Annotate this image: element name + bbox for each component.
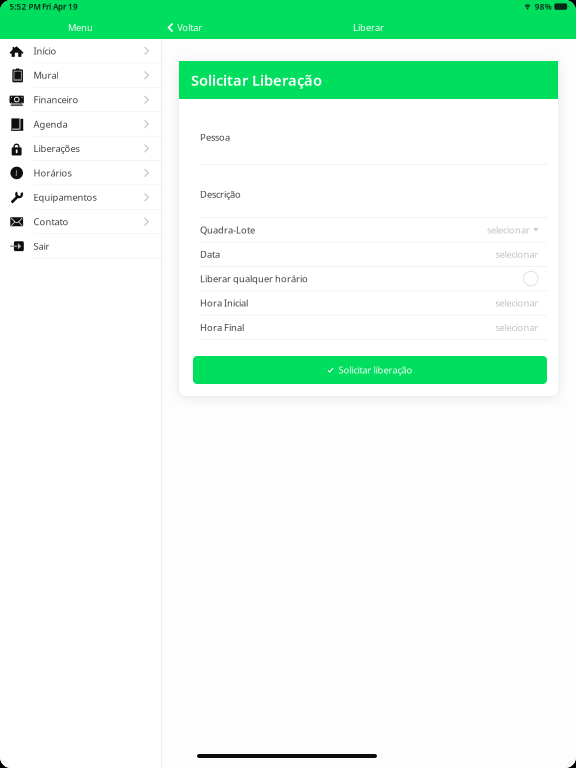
staticText: Liberar qualquer horário — [200, 272, 308, 285]
button[interactable]: Horários — [0, 161, 161, 185]
button[interactable]: Financeiro — [0, 88, 161, 112]
button[interactable]: Menu — [0, 16, 161, 39]
staticText: Mural — [33, 69, 58, 81]
staticText: Pessoa — [200, 131, 230, 143]
staticText: Voltar — [177, 21, 202, 34]
staticText: Agenda — [33, 118, 67, 130]
button[interactable]: Liberar qualquer horário — [179, 267, 558, 291]
button[interactable]: Quadra-Lote — [179, 218, 558, 242]
staticText: Contato — [33, 215, 68, 228]
staticText: Hora Final — [200, 321, 244, 334]
staticText: Data — [200, 248, 220, 260]
staticText: Sair — [33, 240, 49, 252]
button[interactable]: Sair — [0, 234, 161, 259]
staticText: Liberações — [33, 142, 79, 155]
staticText: selecionar — [495, 297, 538, 309]
button[interactable]: Mural — [0, 63, 161, 88]
staticText: Descrição — [200, 188, 241, 200]
staticText: selecionar — [487, 224, 530, 236]
staticText: Equipamentos — [33, 191, 96, 203]
staticText: 5:52 PM — [10, 1, 41, 12]
button[interactable]: Hora Inicial — [179, 291, 558, 316]
staticText: Quadra-Lote — [200, 224, 255, 236]
staticText: Menu — [68, 21, 93, 34]
button[interactable]: Voltar — [161, 16, 210, 39]
staticText: Solicitar Liberação — [191, 70, 322, 90]
staticText: selecionar — [495, 248, 538, 260]
staticText: Hora Inicial — [200, 297, 248, 309]
staticText: Liberar — [353, 21, 384, 34]
button[interactable]: Liberações — [0, 137, 161, 161]
button[interactable]: Solicitar liberação — [193, 356, 547, 384]
button[interactable]: Contato — [0, 210, 161, 234]
staticText: Horários — [33, 167, 71, 179]
button[interactable]: Agenda — [0, 112, 161, 137]
button[interactable]: Equipamentos — [0, 185, 161, 210]
staticText: Solicitar liberação — [338, 364, 412, 376]
button[interactable]: Início — [0, 39, 161, 63]
staticText: Início — [33, 45, 56, 57]
button[interactable]: Data — [179, 242, 558, 267]
button[interactable]: Hora Final — [179, 316, 558, 340]
staticText: Financeiro — [33, 93, 78, 106]
staticText: selecionar — [495, 321, 538, 334]
staticText: Fri Apr 19 — [42, 1, 78, 12]
staticText: 98% — [535, 1, 552, 12]
